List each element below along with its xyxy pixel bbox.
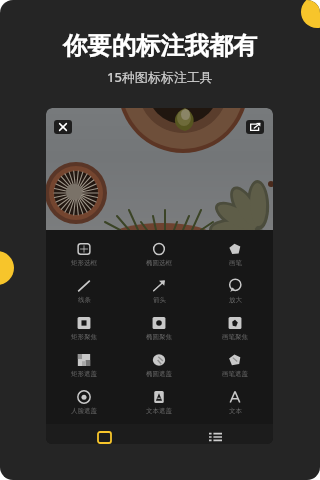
button[interactable]: 矩形聚焦 xyxy=(46,313,121,350)
button[interactable]: 箭头 xyxy=(121,276,197,313)
button[interactable]: 椭圆选框 xyxy=(121,239,197,276)
button[interactable]: Shapes xyxy=(93,427,115,444)
staticText: 文本 xyxy=(229,407,242,415)
button[interactable]: 放大 xyxy=(197,276,273,313)
staticText: 文本遮盖 xyxy=(146,407,172,415)
button[interactable]: Close xyxy=(54,120,72,134)
button[interactable]: 文本遮盖 xyxy=(121,387,197,424)
staticText: 椭圆聚焦 xyxy=(146,333,172,341)
button[interactable]: 线条 xyxy=(46,276,121,313)
button[interactable]: 矩形遮盖 xyxy=(46,350,121,387)
staticText: 椭圆遮盖 xyxy=(146,370,172,378)
button[interactable]: 画笔聚焦 xyxy=(197,313,273,350)
staticText: 线条 xyxy=(78,296,91,304)
button[interactable]: Share xyxy=(246,120,264,134)
staticText: 椭圆选框 xyxy=(146,259,172,267)
staticText: 画笔 xyxy=(229,259,242,267)
staticText: 放大 xyxy=(229,296,242,304)
staticText: 矩形遮盖 xyxy=(71,370,97,378)
button[interactable]: List xyxy=(204,427,226,444)
button[interactable]: 椭圆遮盖 xyxy=(121,350,197,387)
button[interactable]: 人脸遮盖 xyxy=(46,387,121,424)
button[interactable]: 画笔 xyxy=(197,239,273,276)
staticText: 画笔遮盖 xyxy=(222,370,248,378)
button[interactable]: 椭圆聚焦 xyxy=(121,313,197,350)
staticText: 矩形聚焦 xyxy=(71,333,97,341)
staticText: 你要的标注我都有 xyxy=(63,31,258,62)
button[interactable]: 文本 xyxy=(197,387,273,424)
staticText: 箭头 xyxy=(153,296,166,304)
staticText: 画笔聚焦 xyxy=(222,333,248,341)
button[interactable]: 画笔遮盖 xyxy=(197,350,273,387)
staticText: 矩形选框 xyxy=(71,259,97,267)
button[interactable]: 矩形选框 xyxy=(46,239,121,276)
staticText: 人脸遮盖 xyxy=(71,407,97,415)
staticText: 15种图标标注工具 xyxy=(107,68,213,86)
